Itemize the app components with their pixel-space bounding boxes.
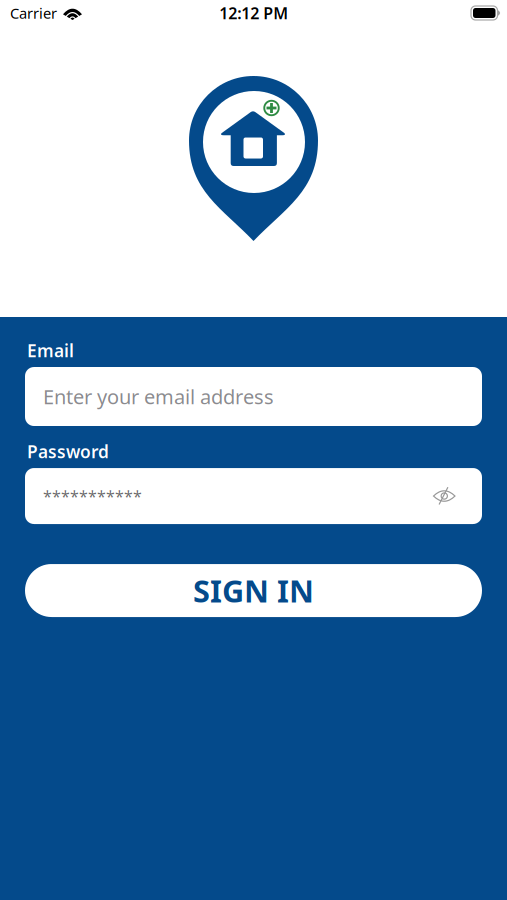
button[interactable]: Enter your email address	[25, 367, 482, 426]
staticText: Carrier	[10, 3, 57, 23]
staticText: Email	[27, 339, 74, 362]
staticText: ***********	[43, 485, 142, 507]
button[interactable]: SIGN IN	[25, 564, 482, 617]
button[interactable]: Show password	[423, 475, 465, 516]
staticText: Password	[27, 440, 109, 463]
staticText: Enter your email address	[43, 383, 274, 410]
staticText: 12:12 PM	[219, 2, 288, 24]
button[interactable]: ***********	[25, 468, 482, 524]
staticText: SIGN IN	[193, 570, 314, 611]
